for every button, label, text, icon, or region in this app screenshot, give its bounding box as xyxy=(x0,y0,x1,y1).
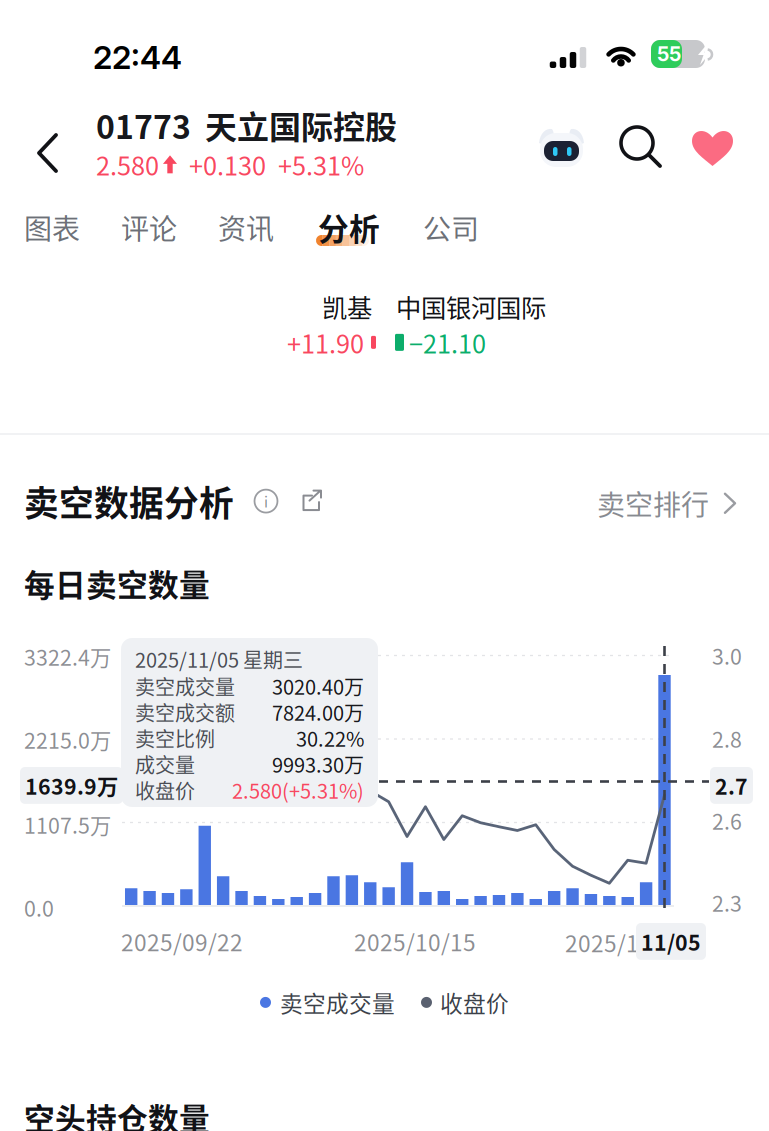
staticText: +0.130 +5.31% xyxy=(177,146,364,183)
button[interactable]: 图表 xyxy=(24,205,88,253)
staticText: 成交量 xyxy=(135,749,195,778)
staticText: 3020.40万 xyxy=(272,671,364,700)
staticText: 每日卖空数量 xyxy=(24,561,210,605)
button[interactable]: 分析 xyxy=(317,205,385,253)
staticText: 卖空成交量 xyxy=(135,671,235,700)
button[interactable]: AI assistant xyxy=(537,127,586,168)
staticText: 01773 天立国际控股 xyxy=(96,102,397,148)
staticText: 7824.00万 xyxy=(272,697,364,726)
staticText: 0.0 xyxy=(24,892,54,923)
button[interactable]: 评论 xyxy=(121,205,185,253)
staticText: 公司 xyxy=(423,207,479,247)
staticText: 2025/11/05 星期三 xyxy=(135,644,303,673)
staticText: 中国银河国际 xyxy=(396,288,546,325)
staticText: 卖空成交额 xyxy=(135,697,235,726)
staticText: 2.7 xyxy=(715,770,748,801)
staticText: 2.580 xyxy=(96,146,159,183)
staticText: 11/05 xyxy=(641,926,701,957)
staticText: 2.6 xyxy=(712,805,742,836)
staticText: 55 xyxy=(657,42,681,66)
staticText: 分析 xyxy=(318,205,380,249)
staticText: 1639.9万 xyxy=(25,770,118,801)
button[interactable]: Search xyxy=(621,127,662,168)
staticText: 资讯 xyxy=(218,207,274,247)
button[interactable]: Share xyxy=(278,489,325,514)
staticText: 凯基 xyxy=(322,288,372,325)
button[interactable]: 资讯 xyxy=(218,205,282,253)
button[interactable]: Info xyxy=(234,489,278,513)
staticText: i xyxy=(264,490,268,512)
staticText: 2.3 xyxy=(712,887,742,918)
staticText: 2025/11 xyxy=(565,926,652,959)
staticText: 2.580(+5.31%) xyxy=(232,775,364,804)
staticText: 2025/09/22 xyxy=(121,925,243,958)
button[interactable]: 公司 xyxy=(423,205,487,253)
staticText: +11.90 xyxy=(287,324,364,361)
staticText: 30.22% xyxy=(296,723,364,752)
button[interactable]: Back xyxy=(20,125,76,181)
staticText: 2025/10/15 xyxy=(354,925,476,958)
staticText: 收盘价 xyxy=(135,775,195,804)
staticText: 卖空成交量 xyxy=(280,986,395,1019)
staticText: 1107.5万 xyxy=(24,809,111,840)
staticText: 2.8 xyxy=(712,723,742,754)
staticText: 评论 xyxy=(121,207,177,247)
staticText: 9993.30万 xyxy=(272,749,364,778)
staticText: 3322.4万 xyxy=(24,641,111,672)
staticText: 22:44 xyxy=(93,38,182,77)
staticText: 空头持仓数量 xyxy=(24,1095,210,1131)
staticText: 图表 xyxy=(24,207,80,247)
button[interactable]: 卖空排行 xyxy=(597,483,738,523)
staticText: 卖空数据分析 xyxy=(24,476,234,526)
staticText: 收盘价 xyxy=(440,986,509,1019)
staticText: 3.0 xyxy=(712,640,742,671)
staticText: −21.10 xyxy=(409,324,486,361)
button[interactable]: Favorite xyxy=(691,129,734,166)
staticText: 卖空比例 xyxy=(135,723,215,752)
staticText: 2215.0万 xyxy=(24,724,111,755)
staticText: 卖空排行 xyxy=(597,483,709,523)
